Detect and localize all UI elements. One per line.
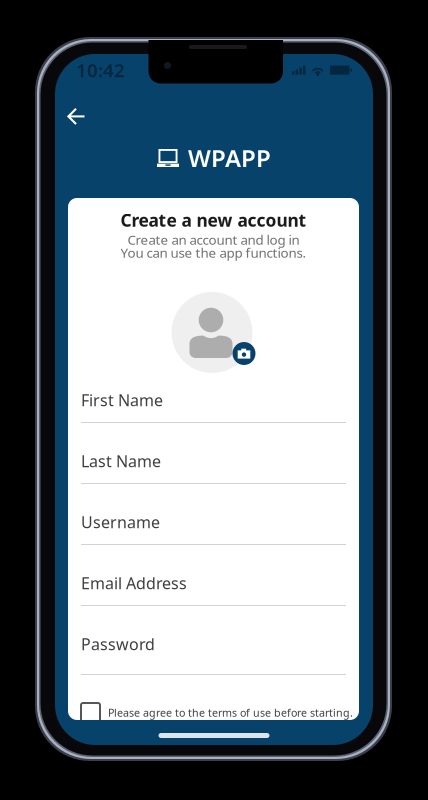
button[interactable]: Last Name	[81, 453, 346, 514]
staticText: Password	[81, 633, 155, 655]
staticText: Create an account and log in	[127, 231, 299, 248]
staticText: Create a new account	[120, 208, 306, 231]
button[interactable]: Password	[81, 636, 346, 698]
staticText: Username	[81, 511, 160, 533]
button[interactable]: Change profile photo	[171, 292, 255, 373]
button[interactable]: Please agree to the terms of use before …	[81, 703, 346, 722]
button[interactable]: Email Address	[81, 575, 346, 636]
staticText: Please agree to the terms of use before …	[108, 705, 353, 720]
staticText: Last Name	[81, 450, 161, 472]
staticText: You can use the app functions.	[120, 244, 306, 261]
staticText: First Name	[81, 389, 163, 411]
staticText: WPAPP	[188, 142, 271, 174]
button[interactable]: Back	[57, 98, 93, 134]
button[interactable]: Username	[81, 514, 346, 575]
staticText: 10:42	[76, 58, 125, 82]
button[interactable]: First Name	[81, 392, 346, 453]
staticText: Email Address	[81, 572, 187, 594]
